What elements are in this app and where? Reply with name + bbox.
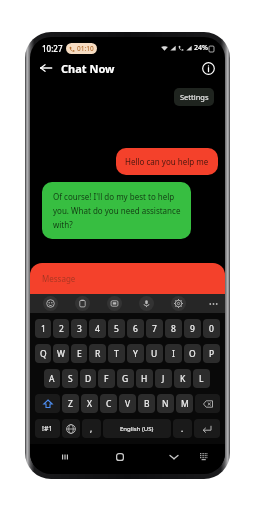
staticText: A — [49, 373, 55, 385]
button[interactable]: Y — [127, 344, 144, 363]
button[interactable]: Recents — [56, 448, 74, 466]
button[interactable]: F — [98, 369, 115, 388]
button[interactable]: N — [157, 394, 174, 413]
button[interactable]: Settings — [174, 88, 214, 106]
button[interactable]: Z — [62, 394, 79, 413]
button[interactable]: 3 — [71, 319, 87, 338]
button[interactable]: 8 — [165, 319, 182, 338]
button[interactable]: Clipboard — [73, 294, 91, 313]
button[interactable]: Keyboard settings — [169, 294, 187, 313]
button[interactable]: Change keyboard — [195, 448, 213, 466]
button[interactable]: . — [173, 419, 192, 438]
staticText: 24% — [194, 43, 208, 53]
button[interactable]: 1 — [35, 319, 51, 338]
staticText: 7 — [152, 323, 157, 335]
staticText: C — [106, 398, 112, 410]
button[interactable]: 9 — [184, 319, 201, 338]
staticText: English (US) — [120, 425, 154, 433]
button[interactable]: Home — [111, 448, 129, 466]
button[interactable]: 4 — [89, 319, 106, 338]
button[interactable]: B — [138, 394, 155, 413]
button[interactable]: I — [165, 344, 182, 363]
staticText: 4 — [95, 323, 100, 335]
button[interactable]: H — [136, 369, 153, 388]
button[interactable]: Info — [198, 58, 218, 78]
button[interactable]: R — [89, 344, 106, 363]
button[interactable]: Stickers — [105, 294, 123, 313]
button[interactable]: P — [203, 344, 220, 363]
staticText: L — [199, 373, 204, 385]
button[interactable]: Enter — [194, 419, 220, 438]
button[interactable]: Voice input — [137, 294, 155, 313]
button[interactable]: More options — [204, 294, 222, 313]
staticText: 10:27 — [42, 43, 63, 54]
staticText: 6 — [133, 323, 138, 335]
staticText: O — [189, 348, 196, 360]
button[interactable]: , — [82, 419, 101, 438]
button[interactable]: !#1 — [35, 419, 60, 438]
staticText: S — [68, 373, 73, 385]
button[interactable]: English (US) — [103, 419, 171, 438]
staticText: 8 — [171, 323, 176, 335]
staticText: , — [90, 423, 93, 434]
staticText: E — [77, 348, 82, 360]
button[interactable]: Back — [36, 58, 56, 78]
button[interactable]: G — [117, 369, 134, 388]
button[interactable]: Backspace — [195, 394, 220, 413]
button[interactable]: M — [176, 394, 193, 413]
button[interactable]: 7 — [146, 319, 163, 338]
button[interactable]: Emoji — [41, 294, 59, 313]
button[interactable]: 0 — [203, 319, 220, 338]
staticText: 2 — [59, 323, 64, 335]
staticText: B — [144, 398, 150, 410]
staticText: Message — [42, 273, 76, 284]
staticText: Y — [133, 348, 138, 360]
button[interactable]: Language — [62, 419, 80, 438]
staticText: 01:10 — [77, 44, 94, 53]
button[interactable]: S — [62, 369, 78, 388]
staticText: N — [162, 398, 169, 410]
staticText: R — [95, 348, 101, 360]
button[interactable]: V — [119, 394, 136, 413]
staticText: Chat Now — [61, 61, 115, 76]
staticText: 3 — [77, 323, 82, 335]
staticText: 0 — [209, 323, 214, 335]
staticText: I — [172, 348, 175, 360]
staticText: T — [114, 348, 119, 360]
button[interactable]: T — [108, 344, 125, 363]
button[interactable]: X — [81, 394, 98, 413]
staticText: F — [104, 373, 109, 385]
staticText: Settings — [180, 92, 209, 102]
button[interactable]: C — [100, 394, 117, 413]
staticText: K — [180, 373, 186, 385]
staticText: P — [209, 348, 215, 360]
button[interactable]: J — [155, 369, 172, 388]
button[interactable]: 2 — [53, 319, 69, 338]
staticText: H — [141, 373, 148, 385]
button[interactable]: Hide keyboard — [165, 448, 183, 466]
staticText: 5 — [114, 323, 119, 335]
button[interactable]: 5 — [108, 319, 125, 338]
staticText: U — [151, 348, 158, 360]
button[interactable]: E — [71, 344, 87, 363]
button[interactable]: D — [80, 369, 96, 388]
button[interactable]: 6 — [127, 319, 144, 338]
button[interactable]: K — [174, 369, 191, 388]
staticText: M — [181, 398, 189, 410]
staticText: G — [122, 373, 129, 385]
button[interactable]: Q — [35, 344, 51, 363]
staticText: 1 — [41, 323, 46, 335]
button[interactable]: L — [193, 369, 210, 388]
button[interactable]: Shift — [35, 394, 60, 413]
button[interactable]: A — [44, 369, 60, 388]
staticText: Z — [68, 398, 73, 410]
staticText: X — [87, 398, 92, 410]
staticText: D — [85, 373, 92, 385]
button[interactable]: Message — [30, 263, 225, 294]
button[interactable]: W — [53, 344, 69, 363]
staticText: . — [181, 423, 184, 434]
button[interactable]: O — [184, 344, 201, 363]
button[interactable]: U — [146, 344, 163, 363]
staticText: J — [162, 373, 165, 385]
staticText: Hello can you help me — [125, 156, 209, 167]
